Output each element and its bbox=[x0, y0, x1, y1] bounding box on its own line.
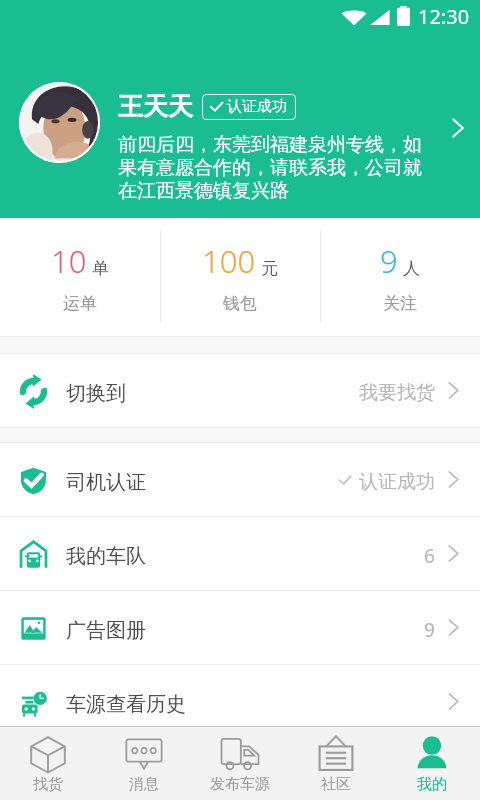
button[interactable]: 司机认证 bbox=[0, 443, 480, 516]
staticText: 100 bbox=[202, 240, 256, 282]
staticText: 我要找货 bbox=[359, 381, 435, 405]
staticText: 6 bbox=[424, 543, 435, 569]
staticText: 发布车源 bbox=[210, 775, 270, 794]
staticText: 9 bbox=[424, 617, 435, 643]
staticText: 元 bbox=[261, 258, 278, 279]
button[interactable]: 消息 bbox=[96, 727, 192, 800]
staticText: 10 bbox=[51, 240, 87, 282]
button[interactable]: 我的车队 bbox=[0, 517, 480, 590]
staticText: 我的 bbox=[417, 775, 447, 794]
staticText: 运单 bbox=[63, 293, 97, 314]
staticText: 广告图册 bbox=[66, 618, 146, 643]
button[interactable]: 我的 bbox=[384, 727, 480, 800]
staticText: 认证成功 bbox=[227, 97, 287, 116]
staticText: 9 bbox=[380, 240, 398, 282]
staticText: 12:30 bbox=[418, 3, 470, 30]
staticText: 钱包 bbox=[223, 293, 257, 314]
button[interactable]: 100 bbox=[160, 218, 320, 336]
staticText: 人 bbox=[403, 258, 420, 279]
button[interactable]: 王天天 bbox=[0, 70, 480, 213]
staticText: 王天天 bbox=[118, 91, 193, 122]
button[interactable]: 广告图册 bbox=[0, 591, 480, 664]
button[interactable]: 切换到 bbox=[0, 354, 480, 427]
button[interactable]: 9 bbox=[320, 218, 480, 336]
staticText: 车源查看历史 bbox=[66, 692, 186, 717]
button[interactable]: 社区 bbox=[288, 727, 384, 800]
staticText: 关注 bbox=[383, 293, 417, 314]
button[interactable]: 10 bbox=[0, 218, 160, 336]
staticText: 社区 bbox=[321, 775, 351, 794]
staticText: 消息 bbox=[129, 775, 159, 794]
staticText: 前四后四，东莞到福建泉州专线，如果有意愿合作的，请联系我，公司就在江西景德镇复兴… bbox=[118, 133, 436, 203]
staticText: 切换到 bbox=[66, 381, 126, 406]
staticText: 认证成功 bbox=[359, 470, 435, 494]
staticText: 找货 bbox=[33, 775, 63, 794]
staticText: 我的车队 bbox=[66, 544, 146, 569]
staticText: 司机认证 bbox=[66, 470, 146, 495]
button[interactable]: 找货 bbox=[0, 727, 96, 800]
staticText: 单 bbox=[92, 258, 109, 279]
button[interactable]: 车源查看历史 bbox=[0, 665, 480, 738]
button[interactable]: 发布车源 bbox=[192, 727, 288, 800]
